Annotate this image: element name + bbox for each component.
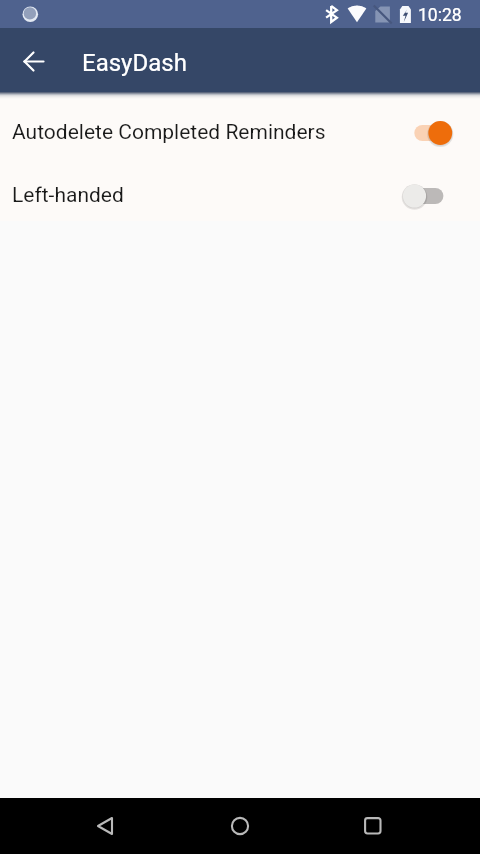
button[interactable]: Back — [82, 802, 130, 850]
button[interactable]: Home — [216, 802, 264, 850]
button[interactable]: Autodelete Completed Reminders — [0, 101, 480, 164]
button[interactable]: Toggle Left-handed — [404, 182, 452, 210]
button[interactable]: Back — [10, 36, 58, 84]
button[interactable]: Toggle Autodelete Completed Reminders — [404, 119, 452, 147]
button[interactable]: Left-handed — [0, 164, 480, 221]
button[interactable]: Recents — [349, 802, 397, 850]
staticText: Autodelete Completed Reminders — [12, 120, 326, 145]
staticText: Left-handed — [12, 183, 124, 208]
staticText: EasyDash — [82, 49, 187, 77]
staticText: 10:28 — [418, 5, 462, 26]
